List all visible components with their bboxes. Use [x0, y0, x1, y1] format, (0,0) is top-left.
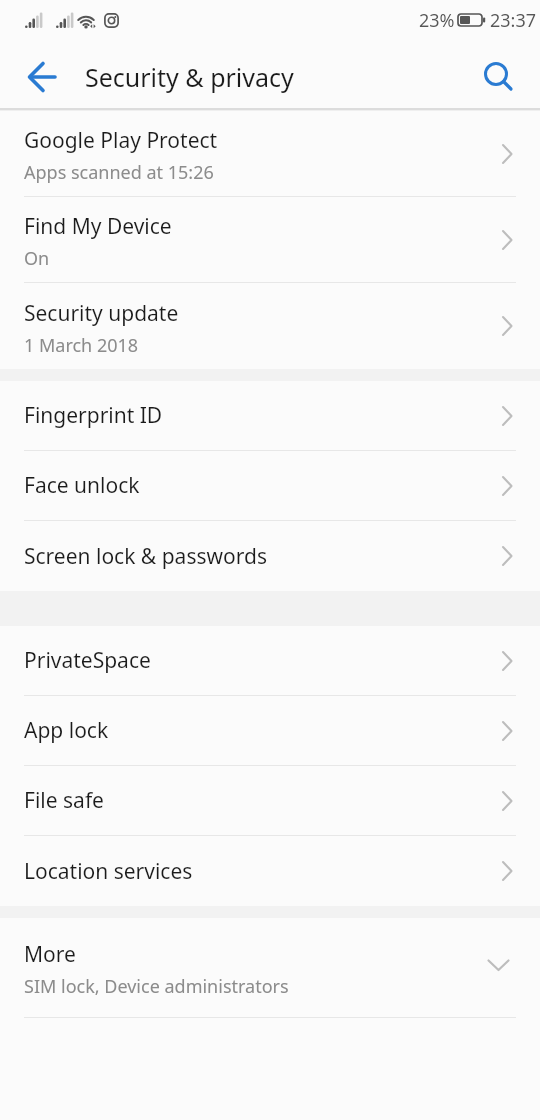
staticText: Apps scanned at 15:26 [24, 160, 214, 185]
button[interactable]: Security update [0, 283, 540, 369]
button[interactable]: Location services [0, 836, 540, 906]
staticText: Face unlock [24, 471, 140, 500]
staticText: 23% [419, 8, 455, 33]
button[interactable]: PrivateSpace [0, 626, 540, 695]
staticText: File safe [24, 786, 104, 815]
button[interactable]: Face unlock [0, 451, 540, 520]
button[interactable]: More [0, 918, 540, 1017]
staticText: Security & privacy [85, 60, 294, 94]
button[interactable]: Fingerprint ID [0, 381, 540, 450]
staticText: 23:37 [490, 8, 537, 33]
button[interactable]: Screen lock & passwords [0, 521, 540, 591]
staticText: More [24, 940, 76, 969]
button[interactable]: File safe [0, 766, 540, 835]
button[interactable] [468, 46, 524, 102]
staticText: Google Play Protect [24, 126, 218, 155]
button[interactable]: Google Play Protect [0, 111, 540, 196]
button[interactable]: App lock [0, 696, 540, 765]
staticText: Location services [24, 857, 193, 886]
staticText: App lock [24, 716, 109, 745]
button[interactable]: Find My Device [0, 197, 540, 282]
staticText: On [24, 246, 50, 271]
staticText: Fingerprint ID [24, 401, 163, 430]
staticText: Security update [24, 299, 179, 328]
staticText: SIM lock, Device administrators [24, 974, 289, 999]
staticText: Find My Device [24, 212, 172, 241]
staticText: PrivateSpace [24, 646, 151, 675]
staticText: 1 March 2018 [24, 333, 139, 358]
button[interactable] [14, 46, 70, 102]
staticText: Screen lock & passwords [24, 542, 267, 571]
